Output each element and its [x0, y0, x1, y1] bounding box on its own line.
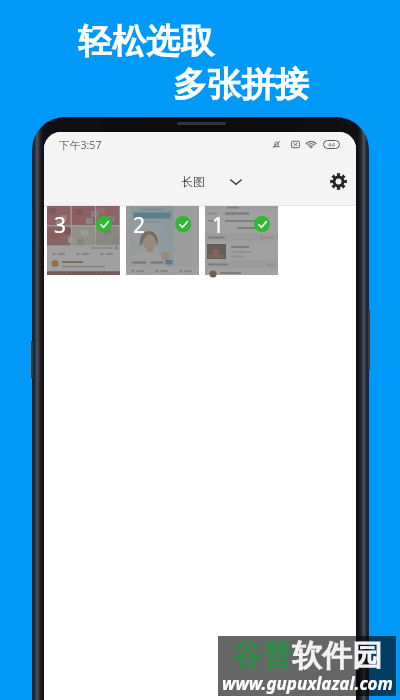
staticText: 长图 — [181, 174, 205, 189]
staticText: 谷普 — [232, 637, 292, 675]
button[interactable]: 2 — [126, 206, 199, 275]
staticText: 3 — [54, 211, 67, 240]
staticText: 软件园 — [292, 637, 382, 675]
button[interactable]: Settings — [324, 167, 352, 195]
staticText: 44 — [328, 141, 335, 149]
staticText: 多张拼接 — [173, 63, 309, 106]
staticText: 1 — [212, 211, 225, 240]
staticText: www.gupuxlazal.com — [222, 672, 393, 695]
staticText: 轻松选取 — [78, 20, 214, 63]
button[interactable]: 3 — [47, 206, 120, 275]
button[interactable]: 长图 — [181, 174, 242, 189]
staticText: 2 — [133, 211, 146, 240]
staticText: 下午3:57 — [59, 138, 102, 153]
button[interactable]: 1 — [205, 206, 278, 275]
